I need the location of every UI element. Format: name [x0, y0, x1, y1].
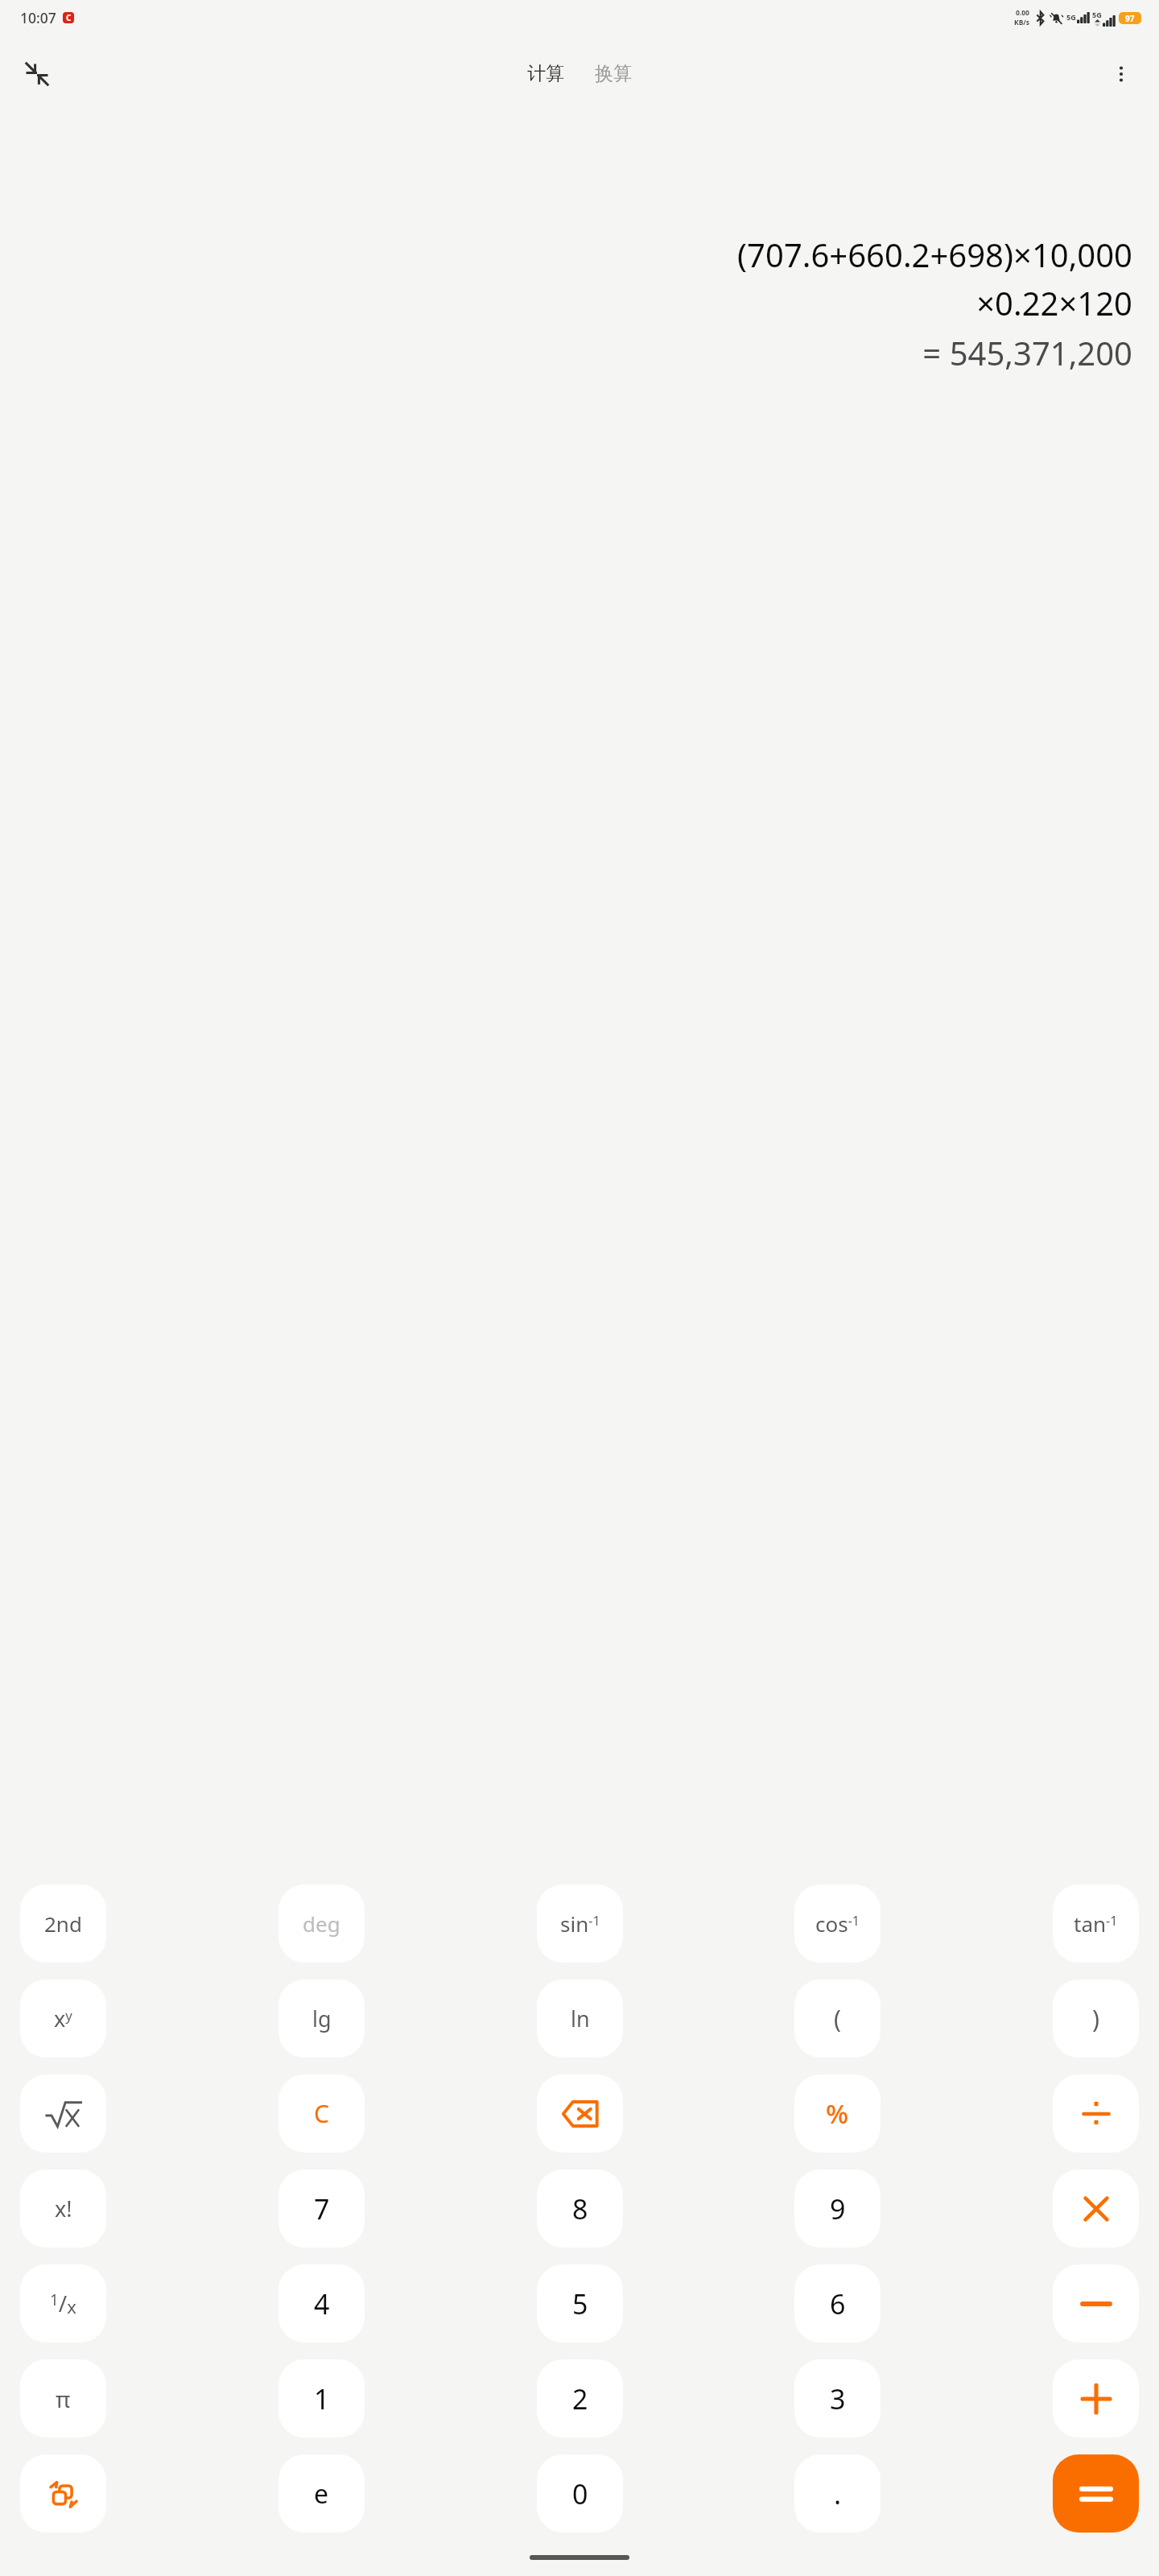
button[interactable]: e: [278, 2454, 365, 2533]
staticText: 5G: [1066, 12, 1076, 22]
button[interactable]: Minus: [1053, 2264, 1139, 2343]
staticText: 2: [572, 2380, 588, 2417]
button[interactable]: π: [20, 2359, 106, 2438]
staticText: e: [314, 2476, 329, 2512]
staticText: 8: [572, 2190, 588, 2227]
button[interactable]: Divide: [1053, 2074, 1139, 2153]
button[interactable]: (: [794, 1979, 881, 2058]
staticText: cos-1: [815, 1909, 860, 1938]
button[interactable]: 4: [278, 2264, 365, 2343]
button[interactable]: Clear: [278, 2074, 365, 2153]
staticText: deg: [303, 1909, 340, 1938]
button[interactable]: Plus: [1053, 2359, 1139, 2438]
button[interactable]: Percent: [794, 2074, 881, 2153]
button[interactable]: 计算: [519, 56, 572, 92]
button[interactable]: x!: [20, 2169, 106, 2248]
button[interactable]: ln: [537, 1979, 623, 2058]
staticText: tan-1: [1074, 1909, 1118, 1938]
button[interactable]: [20, 2074, 106, 2153]
staticText: 4: [314, 2285, 330, 2322]
staticText: 6: [830, 2285, 846, 2322]
staticText: ): [1092, 2002, 1099, 2035]
staticText: = 545,371,200: [27, 331, 1132, 374]
staticText: 7: [314, 2190, 330, 2227]
staticText: sin-1: [560, 1909, 600, 1938]
button[interactable]: 5: [537, 2264, 623, 2343]
button[interactable]: 8: [537, 2169, 623, 2248]
staticText: 97: [1125, 13, 1135, 24]
button[interactable]: Copy: [20, 2454, 106, 2533]
staticText: C: [314, 2097, 329, 2130]
staticText: 3: [830, 2380, 846, 2417]
staticText: (: [834, 2002, 841, 2035]
staticText: ×0.22×120: [27, 281, 1132, 324]
button[interactable]: 1: [278, 2359, 365, 2438]
button[interactable]: 6: [794, 2264, 881, 2343]
button[interactable]: sin-1: [537, 1885, 623, 1963]
staticText: 9: [830, 2190, 846, 2227]
staticText: 2nd: [44, 1909, 82, 1938]
staticText: ln: [571, 2004, 590, 2033]
button[interactable]: cos-1: [794, 1885, 881, 1963]
button[interactable]: deg: [278, 1885, 365, 1963]
button[interactable]: More options: [1099, 52, 1143, 96]
staticText: 5: [572, 2285, 588, 2322]
button[interactable]: 换算: [587, 56, 640, 92]
button[interactable]: .: [794, 2454, 881, 2533]
button[interactable]: 9: [794, 2169, 881, 2248]
button[interactable]: Backspace: [537, 2074, 623, 2153]
button[interactable]: xy: [20, 1979, 106, 2058]
button[interactable]: 2: [537, 2359, 623, 2438]
staticText: 1/x: [50, 2288, 76, 2319]
staticText: C: [66, 12, 72, 23]
button[interactable]: Collapse: [14, 52, 60, 97]
staticText: KB/s: [1014, 18, 1030, 27]
staticText: π: [56, 2384, 71, 2414]
staticText: 0.00: [1016, 8, 1029, 18]
staticText: .: [834, 2475, 842, 2512]
staticText: 5G: [1092, 10, 1102, 19]
button[interactable]: 7: [278, 2169, 365, 2248]
staticText: lg: [312, 2004, 332, 2033]
staticText: 10:07: [20, 8, 56, 27]
button[interactable]: ): [1053, 1979, 1139, 2058]
staticText: xy: [54, 2004, 72, 2033]
button[interactable]: Multiply: [1053, 2169, 1139, 2248]
staticText: (707.6+660.2+698)×10,000: [27, 233, 1132, 276]
button[interactable]: lg: [278, 1979, 365, 2058]
staticText: 0: [572, 2475, 588, 2512]
staticText: 换算: [595, 62, 632, 85]
staticText: 计算: [527, 62, 564, 85]
staticText: x!: [55, 2194, 72, 2223]
button[interactable]: 0: [537, 2454, 623, 2533]
staticText: 1: [314, 2380, 330, 2417]
button[interactable]: 2nd: [20, 1885, 106, 1963]
button[interactable]: 1/x: [20, 2264, 106, 2343]
staticText: %: [826, 2095, 849, 2132]
button[interactable]: Equals: [1053, 2454, 1139, 2533]
button[interactable]: 3: [794, 2359, 881, 2438]
button[interactable]: tan-1: [1053, 1885, 1139, 1963]
